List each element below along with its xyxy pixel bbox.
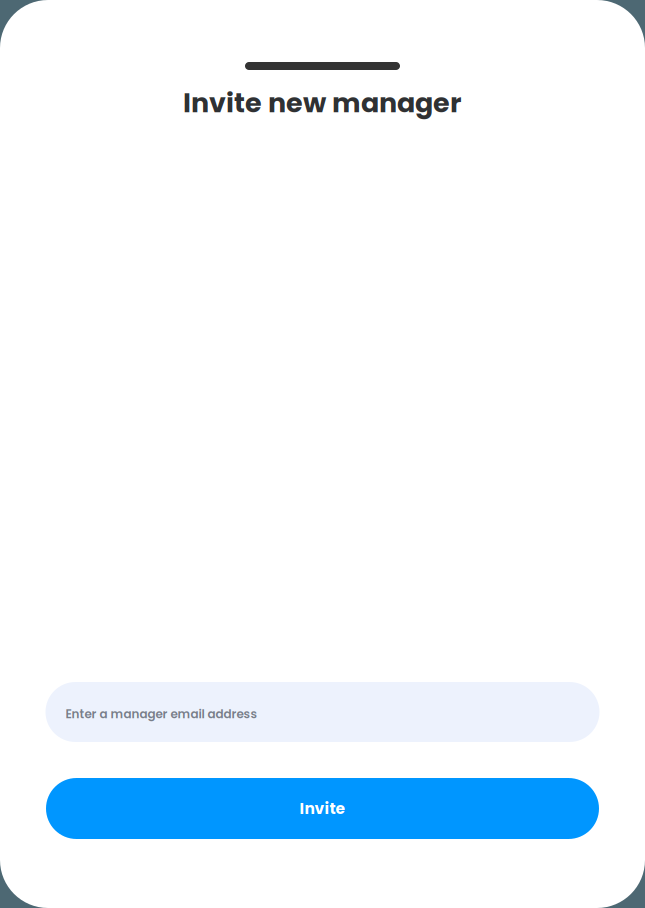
button[interactable]: Enter a manager email address: [45, 682, 599, 742]
staticText: Invite new manager: [183, 84, 462, 122]
button[interactable]: Invite: [46, 778, 599, 839]
staticText: Invite: [299, 798, 345, 819]
staticText: Enter a manager email address: [65, 706, 257, 722]
